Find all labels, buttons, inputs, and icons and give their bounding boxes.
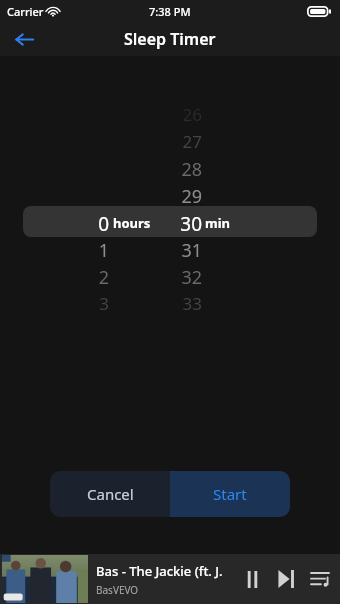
button[interactable]: Queue [303, 562, 337, 596]
staticText: 30 [180, 211, 202, 237]
staticText: 27 [182, 130, 202, 153]
staticText: 31 [181, 238, 202, 263]
staticText: 3 [99, 292, 109, 315]
staticText: Sleep Timer [124, 28, 216, 50]
staticText: 1 [98, 238, 109, 263]
staticText: 7:38 PM [149, 4, 191, 19]
staticText: 29 [181, 184, 202, 209]
button[interactable]: Back [6, 22, 42, 56]
button[interactable]: Cancel [50, 471, 170, 517]
staticText: 33 [182, 292, 202, 315]
staticText: Bas - The Jackie (ft. J. C [96, 562, 233, 580]
button[interactable] [23, 206, 317, 237]
staticText: Cancel [87, 484, 134, 504]
staticText: min [205, 214, 231, 232]
staticText: 2 [98, 265, 109, 290]
staticText: Carrier [7, 4, 44, 19]
staticText: 32 [181, 265, 202, 290]
staticText: hours [113, 214, 151, 232]
button[interactable]: Pause [235, 562, 269, 596]
staticText: BasVEVO [96, 583, 139, 597]
staticText: 0 [98, 211, 109, 237]
button[interactable]: Start [170, 471, 290, 517]
button[interactable]: Bas - The Jackie (ft. J. C [0, 554, 340, 604]
staticText: 28 [181, 157, 202, 182]
button[interactable]: Next track [269, 562, 303, 596]
staticText: Start [213, 484, 247, 504]
staticText: 26 [182, 103, 202, 126]
